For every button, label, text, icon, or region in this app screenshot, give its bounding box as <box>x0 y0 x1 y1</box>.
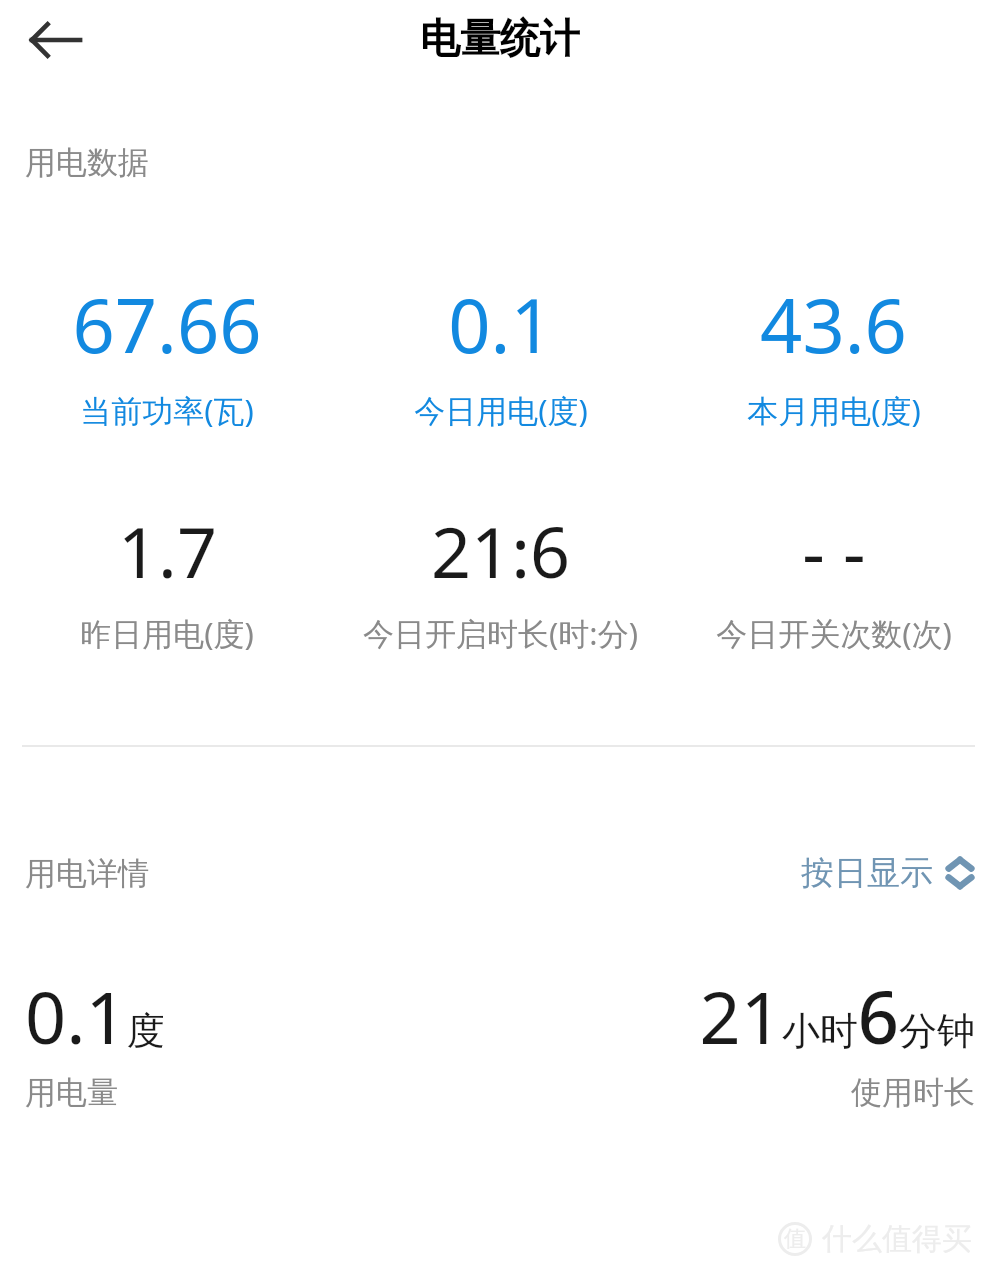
staticText: 0.1度 <box>25 967 165 1065</box>
staticText: 本月用电(度) <box>747 389 921 431</box>
staticText: 昨日用电(度) <box>80 612 254 654</box>
staticText: 67.66 <box>72 274 262 375</box>
staticText: 电量统计 <box>420 13 580 63</box>
staticText: 按日显示 <box>801 852 933 894</box>
staticText: - - <box>802 503 866 598</box>
staticText: 用电数据 <box>25 143 149 182</box>
staticText: 当前功率(瓦) <box>80 389 254 431</box>
staticText: 21:6 <box>431 503 570 598</box>
staticText: 今日用电(度) <box>414 389 588 431</box>
staticText: 0.1 <box>448 274 553 375</box>
staticText: 用电详情 <box>25 854 149 893</box>
button[interactable]: 按日显示 <box>801 851 975 895</box>
staticText: 值 <box>784 1225 806 1253</box>
staticText: 43.6 <box>760 274 907 375</box>
staticText: 今日开启时长(时:分) <box>363 612 638 654</box>
staticText: 21小时6分钟 <box>699 967 975 1065</box>
staticText: 用电量 <box>25 1073 118 1112</box>
button[interactable]: Back <box>14 0 98 80</box>
staticText: 什么值得买 <box>822 1220 972 1258</box>
staticText: 1.7 <box>118 503 217 598</box>
staticText: 使用时长 <box>851 1073 975 1112</box>
staticText: 今日开关次数(次) <box>716 612 952 654</box>
